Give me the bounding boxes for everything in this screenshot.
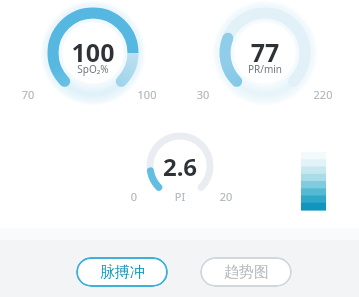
staticText: 0 — [125, 189, 143, 204]
button[interactable]: 脉搏冲 — [76, 257, 168, 287]
staticText: PI — [168, 189, 192, 204]
staticText: 趋势图 — [224, 263, 269, 282]
button[interactable]: 趋势图 — [200, 257, 292, 287]
button[interactable]: Signal strength — [301, 152, 326, 210]
staticText: 30 — [190, 87, 216, 102]
staticText: 77 — [235, 35, 295, 69]
staticText: PR/min — [235, 62, 295, 76]
staticText: 100 — [63, 35, 123, 69]
staticText: 70 — [15, 87, 41, 102]
staticText: 20 — [213, 189, 239, 204]
staticText: 220 — [307, 87, 339, 102]
staticText: 100 — [132, 87, 162, 102]
staticText: SpO₂% — [63, 62, 123, 76]
staticText: 2.6 — [152, 150, 208, 183]
staticText: 脉搏冲 — [100, 263, 145, 282]
